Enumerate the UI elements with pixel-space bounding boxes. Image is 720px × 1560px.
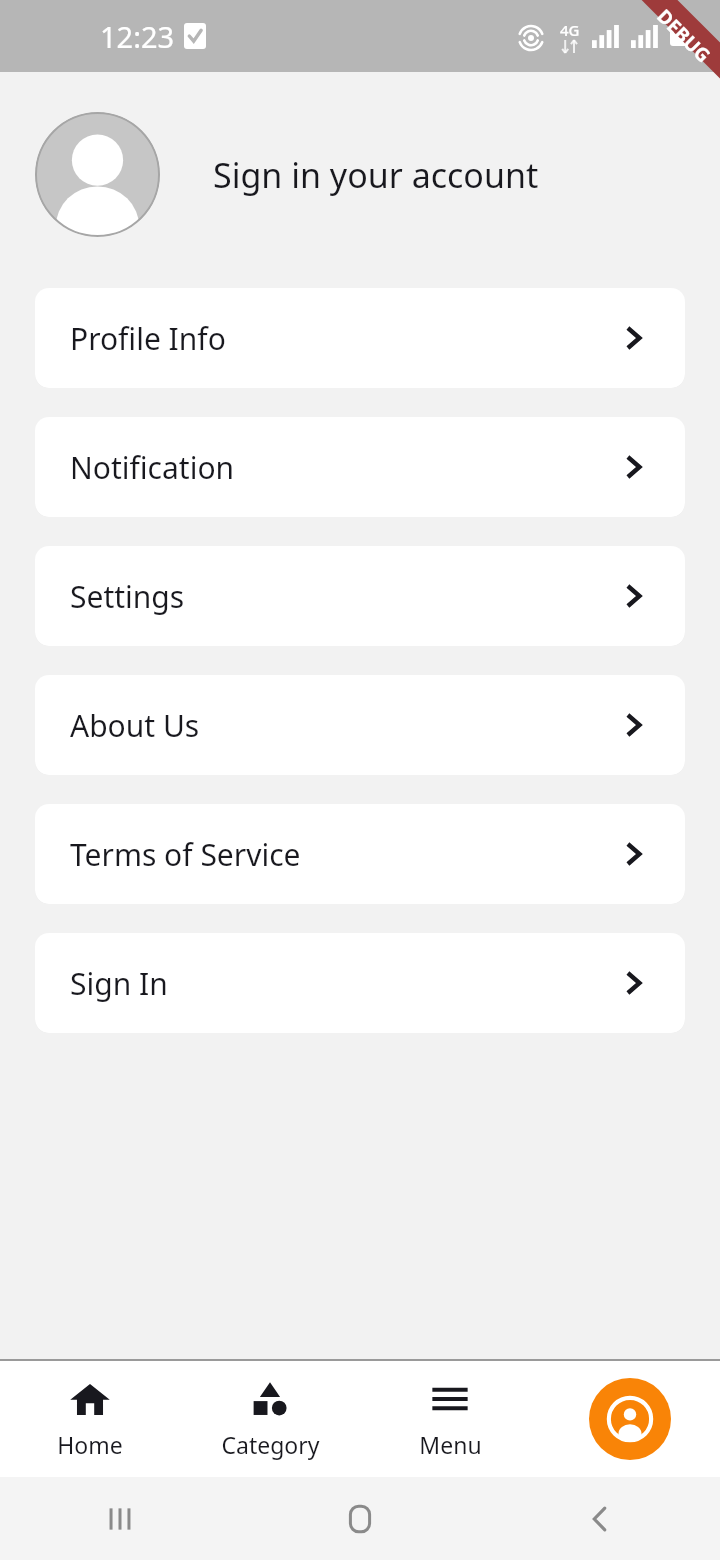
button[interactable]: Category xyxy=(180,1361,360,1477)
button[interactable]: Account xyxy=(589,1378,671,1460)
button[interactable]: Home xyxy=(0,1361,180,1477)
staticText: Profile Info xyxy=(70,318,621,359)
button[interactable]: Sign In xyxy=(35,933,685,1033)
staticText: 4G xyxy=(560,20,580,40)
staticText: Category xyxy=(221,1429,320,1460)
button[interactable]: About Us xyxy=(35,675,685,775)
staticText: DEBUG xyxy=(651,3,717,69)
staticText: Notification xyxy=(70,447,621,488)
staticText: Sign in your account xyxy=(213,152,539,198)
button[interactable]: Settings xyxy=(35,546,685,646)
staticText: Sign In xyxy=(70,963,621,1004)
button[interactable]: Terms of Service xyxy=(35,804,685,904)
button[interactable]: Menu xyxy=(360,1361,540,1477)
staticText: Home xyxy=(57,1429,123,1460)
staticText: Menu xyxy=(419,1429,482,1460)
staticText: Settings xyxy=(70,576,621,617)
button[interactable]: Profile Info xyxy=(35,288,685,388)
staticText: About Us xyxy=(70,705,621,746)
staticText: Terms of Service xyxy=(70,834,621,875)
button[interactable]: Notification xyxy=(35,417,685,517)
staticText: 12:23 xyxy=(100,17,175,56)
